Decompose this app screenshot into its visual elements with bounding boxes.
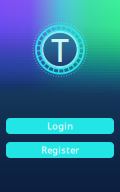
staticText: T [51, 28, 69, 71]
button[interactable]: Register [6, 142, 114, 158]
staticText: Register [41, 144, 79, 156]
button[interactable]: Login [6, 118, 114, 134]
staticText: Login [47, 120, 73, 132]
